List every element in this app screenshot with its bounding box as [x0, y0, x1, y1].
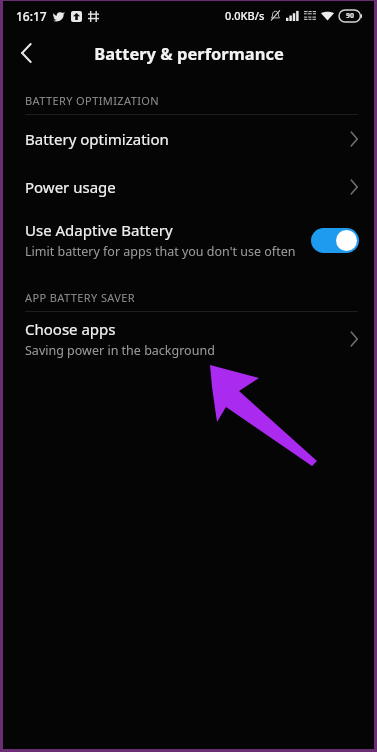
- button[interactable]: Use Adaptive Battery: [3, 211, 374, 269]
- button[interactable]: Power usage: [3, 163, 374, 211]
- staticText: BATTERY OPTIMIZATION: [25, 93, 160, 108]
- staticText: 16:17: [16, 8, 47, 24]
- staticText: APP BATTERY SAVER: [25, 290, 136, 305]
- staticText: 0.0KB/s: [225, 8, 265, 23]
- button[interactable]: Use Adaptive Battery toggle: [311, 228, 359, 253]
- staticText: 90: [346, 11, 355, 21]
- staticText: Limit battery for apps that you don't us…: [25, 243, 296, 260]
- staticText: Battery & performance: [94, 42, 284, 64]
- staticText: Use Adaptive Battery: [25, 220, 173, 240]
- staticText: Power usage: [25, 177, 350, 197]
- staticText: Saving power in the background: [25, 342, 215, 359]
- staticText: Choose apps: [25, 319, 116, 339]
- button[interactable]: Battery optimization: [3, 115, 374, 163]
- button[interactable]: Back: [3, 30, 49, 76]
- staticText: Battery optimization: [25, 129, 350, 149]
- button[interactable]: Choose apps: [3, 312, 374, 366]
